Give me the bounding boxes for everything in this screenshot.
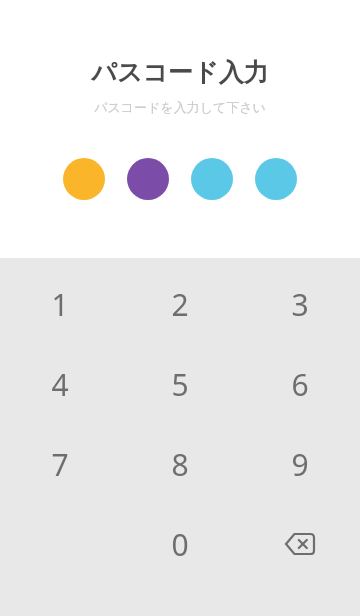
button[interactable]: 2 bbox=[120, 264, 240, 344]
staticText: 6 bbox=[291, 364, 309, 405]
button[interactable]: 3 bbox=[240, 264, 360, 344]
staticText: 7 bbox=[51, 444, 69, 485]
staticText: 3 bbox=[291, 284, 309, 325]
staticText: 4 bbox=[51, 364, 69, 405]
staticText: 5 bbox=[171, 364, 189, 405]
button[interactable]: 7 bbox=[0, 424, 120, 504]
staticText: 8 bbox=[171, 444, 189, 485]
button[interactable]: 6 bbox=[240, 344, 360, 424]
staticText: 0 bbox=[171, 524, 189, 565]
button[interactable]: 1 bbox=[0, 264, 120, 344]
button[interactable]: Backspace bbox=[240, 504, 360, 584]
staticText: 1 bbox=[51, 284, 69, 325]
button[interactable]: 4 bbox=[0, 344, 120, 424]
button[interactable]: 5 bbox=[120, 344, 240, 424]
button[interactable]: 8 bbox=[120, 424, 240, 504]
staticText: 2 bbox=[171, 284, 189, 325]
button[interactable]: 9 bbox=[240, 424, 360, 504]
staticText: 9 bbox=[291, 444, 309, 485]
staticText: パスコード入力 bbox=[91, 57, 269, 88]
button[interactable]: 0 bbox=[120, 504, 240, 584]
staticText: パスコードを入力して下さい bbox=[94, 99, 266, 115]
